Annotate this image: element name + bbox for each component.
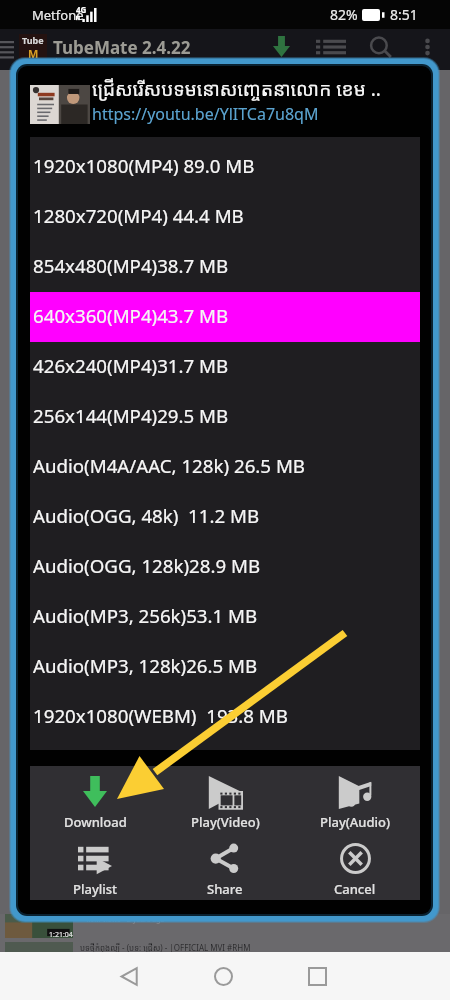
staticText: Tube [22,34,44,46]
button[interactable]: Play(Video) [160,766,290,833]
staticText: ជ្រើសរើសបទមនោសញ្ចេតនាលោក ខេម .. [92,76,381,102]
staticText: Download [64,813,127,831]
button[interactable]: Playlist [30,833,160,900]
staticText: Share [207,880,243,898]
staticText: 426x240(MP4)31.7 MB [33,353,229,378]
button[interactable]: 426x240(MP4)31.7 MB [30,342,420,392]
staticText: 1:21:04 [49,930,73,940]
button[interactable]: Audio(MP3, 256k)53.1 MB [30,592,420,642]
button[interactable]: Play(Audio) [290,766,420,833]
staticText: http://tubemate.net [55,55,168,71]
staticText: Audio(OGG, 48k) 11.2 MB [33,503,260,528]
button[interactable]: Audio(MP3, 128k)26.5 MB [30,642,420,692]
staticText: Audio(M4A/AAC, 128k) 26.5 MB [33,453,305,478]
staticText: https://youtu.be/YlITCa7u8qM [92,103,319,125]
button[interactable]: 1280x720(MP4) 44.4 MB [30,192,420,242]
staticText: Play(Video) [191,813,260,831]
staticText: • 4.9M views • 2 years ago [80,915,165,925]
button[interactable]: 640x360(MP4)43.7 MB [30,292,420,342]
staticText: 8:51 [390,5,418,24]
button[interactable]: Download [30,766,160,833]
staticText: Audio(MP3, 256k)53.1 MB [33,603,258,628]
staticText: Playlist [73,880,118,898]
button[interactable]: 256x144(MP4)29.5 MB [30,392,420,442]
button[interactable]: Back [99,952,159,1000]
staticText: 1920x1080(WEBM) 193.8 MB [33,703,288,728]
staticText: បទថ្មីកំពុងល្បី - (បទ: ជ្រើស) - |OFFICIA… [80,942,251,953]
staticText: 82% [330,5,358,24]
button[interactable]: Cancel [290,833,420,900]
staticText: Play(Audio) [320,813,391,831]
staticText: 854x480(MP4)38.7 MB [33,253,229,278]
button[interactable]: 1920x1080(WEBM) 193.8 MB [30,692,420,742]
staticText: Cancel [334,880,376,898]
button[interactable]: Share [160,833,290,900]
button[interactable]: Audio(OGG, 48k) 11.2 MB [30,492,420,542]
staticText: 1920x1080(MP4) 89.0 MB [33,153,255,178]
staticText: 256x144(MP4)29.5 MB [33,403,229,428]
button[interactable]: Recent apps [287,952,347,1000]
staticText: Audio(OGG, 128k)28.9 MB [33,553,261,578]
button[interactable]: Home [193,952,253,1000]
staticText: 640x360(MP4)43.7 MB [33,303,229,328]
staticText: 1280x720(MP4) 44.4 MB [33,203,244,228]
button[interactable]: 1920x1080(MP4) 89.0 MB [30,142,420,192]
staticText: TubeMate 2.4.22 [53,36,191,59]
staticText: M [28,46,39,60]
staticText: 4G [76,4,87,15]
staticText: Metfone [32,6,84,24]
button[interactable]: 854x480(MP4)38.7 MB [30,242,420,292]
staticText: Audio(MP3, 128k)26.5 MB [33,653,258,678]
button[interactable]: Audio(OGG, 128k)28.9 MB [30,542,420,592]
button[interactable]: Audio(M4A/AAC, 128k) 26.5 MB [30,442,420,492]
